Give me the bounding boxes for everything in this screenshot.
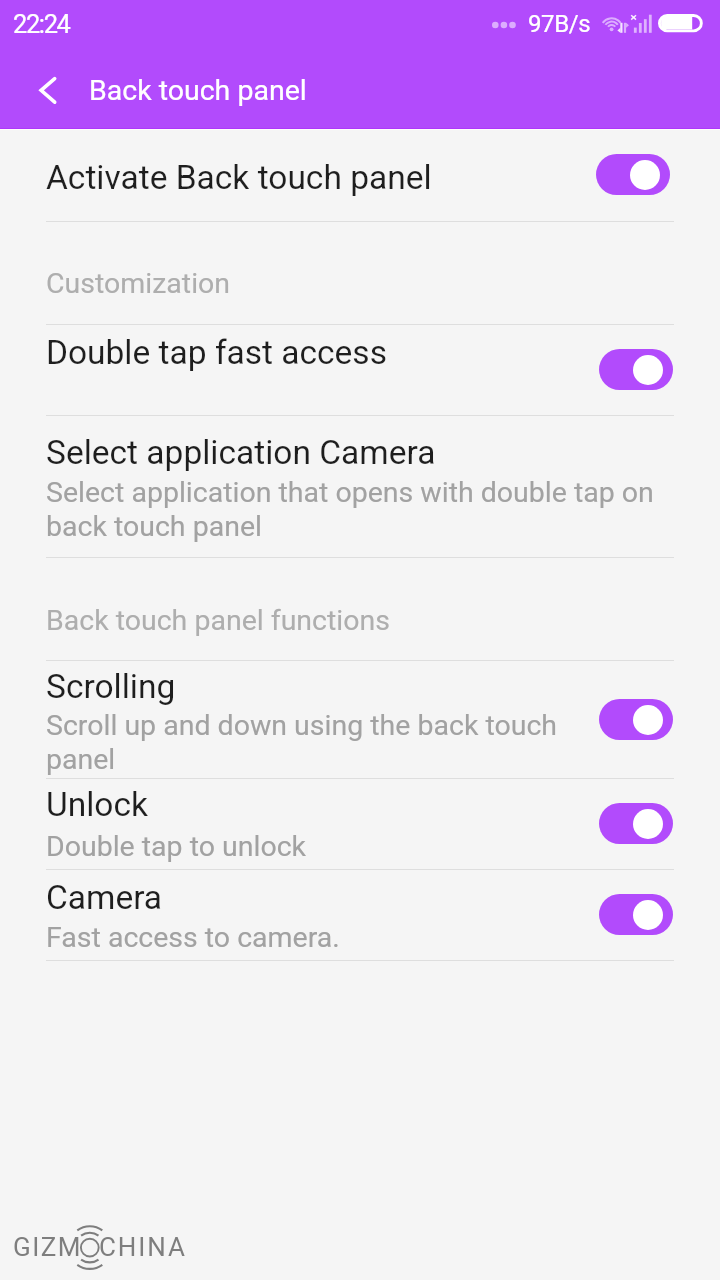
button[interactable]: Toggle Camera [599,894,673,935]
staticText: Back touch panel [89,74,307,107]
staticText: CHINA [99,1232,187,1262]
staticText: Scroll up and down using the back touch … [46,709,586,776]
button[interactable]: Activate Back touch panel [0,130,720,221]
staticText: Unlock [46,785,148,824]
button[interactable]: Back [19,62,65,120]
staticText: Double tap fast access [46,333,387,372]
button[interactable]: Toggle Unlock [599,803,673,844]
staticText: 22:24 [13,9,70,39]
staticText: Activate Back touch panel [46,158,432,197]
button[interactable]: Select application Camera [0,416,720,557]
button[interactable]: Unlock [0,779,720,869]
staticText: GIZM [13,1232,83,1262]
staticText: Scrolling [46,667,176,706]
button[interactable]: Scrolling [0,661,720,778]
staticText: Fast access to camera. [46,921,586,954]
staticText: Double tap to unlock [46,830,586,863]
button[interactable]: Toggle Activate Back touch panel [596,154,670,195]
staticText: Select application Camera [46,433,436,472]
button[interactable]: Camera [0,870,720,960]
button[interactable]: Toggle Scrolling [599,699,673,740]
staticText: 97B/s [528,10,591,38]
button[interactable]: Double tap fast access [0,325,720,415]
staticText: Select application that opens with doubl… [46,476,668,543]
staticText: Customization [46,267,231,300]
button[interactable]: Toggle Double tap fast access [599,349,673,390]
staticText: Camera [46,878,163,917]
staticText: Back touch panel functions [46,604,390,637]
